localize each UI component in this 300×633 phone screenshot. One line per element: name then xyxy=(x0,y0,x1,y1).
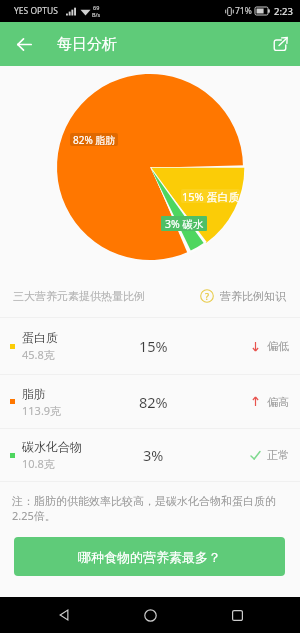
button[interactable]: Back xyxy=(41,597,87,633)
button[interactable]: ? xyxy=(200,289,286,303)
staticText: 113.9克 xyxy=(22,403,62,418)
staticText: 哪种食物的营养素最多？ xyxy=(78,549,221,565)
staticText: 营养比例知识 xyxy=(220,289,286,303)
staticText: 3% xyxy=(143,445,164,465)
staticText: YES OPTUS xyxy=(14,5,58,17)
button[interactable]: Recents xyxy=(214,597,260,633)
staticText: 注：脂肪的供能效率比较高，是碳水化合物和蛋白质的2.25倍。 xyxy=(12,494,287,523)
button[interactable]: 脂肪 xyxy=(0,375,300,428)
button[interactable]: 碳水化合物 xyxy=(0,429,300,481)
staticText: 15% 蛋白质 xyxy=(182,189,240,203)
staticText: 每日分析 xyxy=(57,35,117,54)
button[interactable]: Home xyxy=(127,597,173,633)
staticText: 3% 碳水 xyxy=(165,217,204,231)
staticText: 偏高 xyxy=(267,395,289,409)
staticText: 82% xyxy=(139,392,168,412)
staticText: 偏低 xyxy=(267,339,289,353)
button[interactable]: 哪种食物的营养素最多？ xyxy=(14,537,285,576)
staticText: 71% xyxy=(235,5,252,17)
staticText: 蛋白质 xyxy=(22,330,58,345)
staticText: 脂肪 xyxy=(22,386,46,401)
staticText: 正常 xyxy=(267,448,289,462)
button[interactable]: 蛋白质 xyxy=(0,318,300,374)
staticText: 2:23 xyxy=(274,5,293,18)
button[interactable]: Back xyxy=(0,22,48,66)
button[interactable]: Share xyxy=(260,22,300,66)
staticText: 10.8克 xyxy=(22,456,55,471)
staticText: 45.8克 xyxy=(22,347,55,362)
staticText: 15% xyxy=(139,336,168,356)
staticText: ? xyxy=(205,290,210,302)
staticText: 三大营养元素提供热量比例 xyxy=(13,289,145,303)
staticText: 82% 脂肪 xyxy=(73,133,116,146)
staticText: B/s xyxy=(92,11,101,18)
staticText: 碳水化合物 xyxy=(22,439,82,454)
staticText: 69 xyxy=(93,4,100,11)
